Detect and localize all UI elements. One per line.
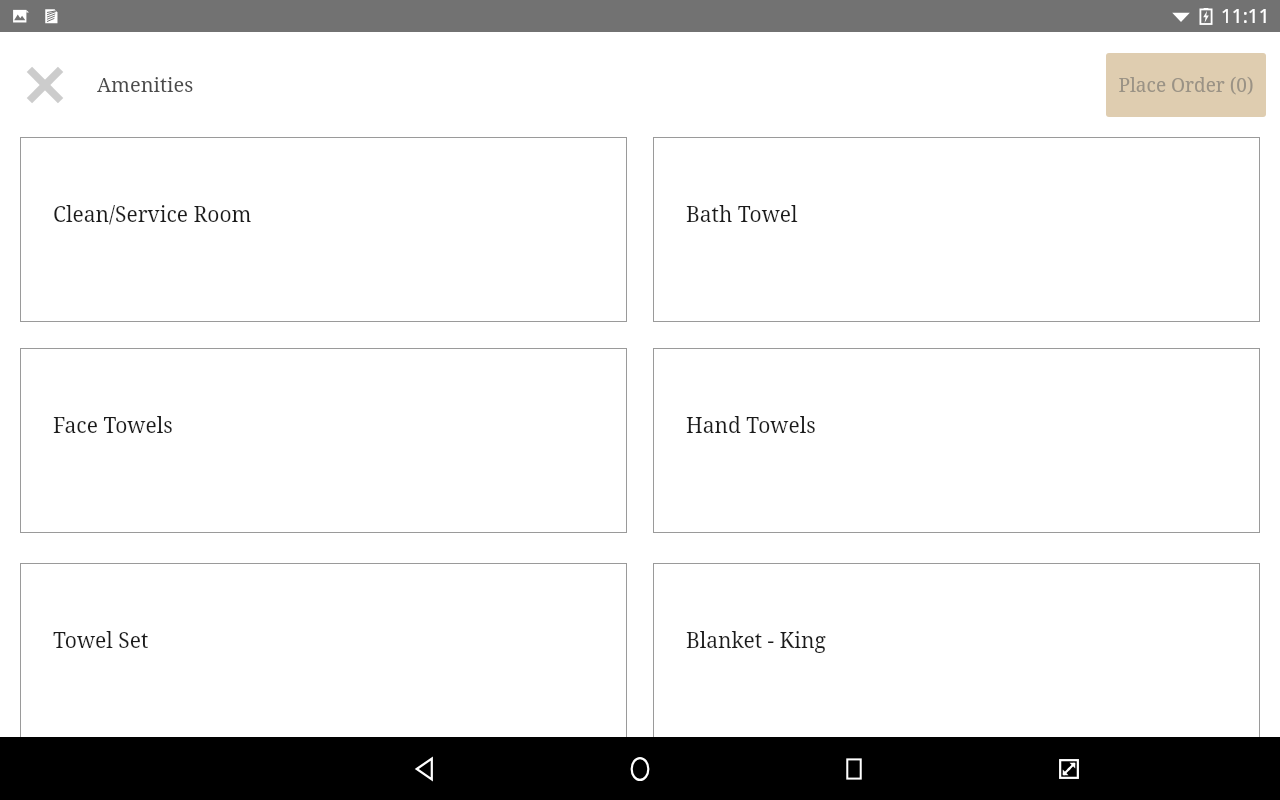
staticText: Towel Set	[53, 626, 149, 655]
staticText: Place Order (0)	[1118, 72, 1254, 98]
button[interactable]: Back	[398, 743, 450, 795]
staticText: Blanket - King	[686, 626, 826, 655]
button[interactable]: Towel Set	[20, 563, 627, 748]
button[interactable]: Close	[19, 59, 71, 111]
staticText: Amenities	[97, 71, 194, 98]
staticText: Hand Towels	[686, 411, 816, 440]
button[interactable]: Blanket - King	[653, 563, 1260, 748]
button[interactable]: Bath Towel	[653, 137, 1260, 322]
button[interactable]: Hand Towels	[653, 348, 1260, 533]
button[interactable]: Recent apps	[828, 743, 880, 795]
button[interactable]: Resize window	[1043, 743, 1095, 795]
button[interactable]: Clean/Service Room	[20, 137, 627, 322]
staticText: 11:11	[1221, 3, 1270, 29]
button[interactable]: Home	[614, 743, 666, 795]
staticText: Face Towels	[53, 411, 173, 440]
staticText: Clean/Service Room	[53, 200, 252, 229]
staticText: Bath Towel	[686, 200, 798, 229]
button[interactable]: Face Towels	[20, 348, 627, 533]
button[interactable]: Place Order (0)	[1106, 53, 1266, 117]
